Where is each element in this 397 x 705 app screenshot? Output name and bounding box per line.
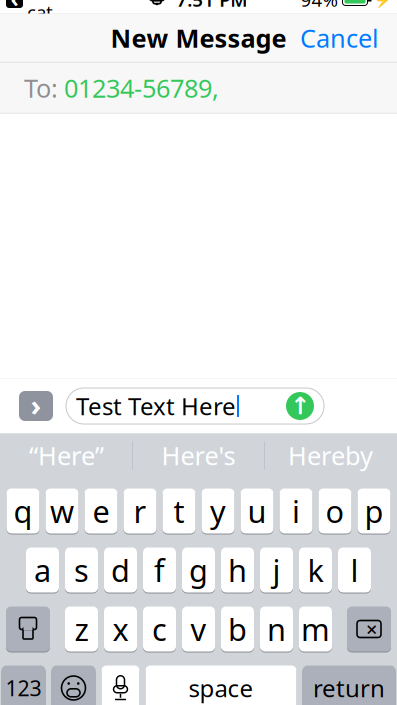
button[interactable]: Test Text Here (66, 386, 324, 426)
button[interactable]: d (104, 546, 137, 593)
staticText: c (152, 609, 167, 649)
staticText: ↑ (290, 392, 310, 420)
staticText: 01234-56789, (64, 71, 219, 105)
button[interactable]: o (318, 487, 351, 534)
staticText: Here's (161, 439, 235, 472)
button[interactable]: More options (16, 386, 56, 426)
button[interactable]: f (143, 546, 176, 593)
button[interactable]: r (123, 487, 156, 534)
button[interactable]: m (299, 605, 332, 652)
button[interactable]: To: (0, 62, 397, 113)
staticText: s (74, 550, 89, 590)
staticText: d (111, 550, 130, 590)
button[interactable]: u (240, 487, 273, 534)
button[interactable]: i (279, 487, 312, 534)
button[interactable]: w (45, 487, 78, 534)
staticText: q (13, 491, 32, 531)
staticText: To: (24, 71, 58, 105)
staticText: x (112, 609, 128, 649)
staticText: 7:51 PM (176, 0, 247, 12)
staticText: k (307, 550, 323, 590)
staticText: New Message (110, 21, 286, 55)
staticText: n (267, 609, 286, 649)
button[interactable]: Emoji (51, 664, 95, 705)
staticText: “Here” (29, 439, 104, 472)
staticText: × (366, 616, 377, 642)
staticText: a (34, 550, 51, 590)
button[interactable]: t (162, 487, 195, 534)
button[interactable]: y (201, 487, 234, 534)
staticText: space (188, 672, 253, 704)
button[interactable]: l (338, 546, 371, 593)
button[interactable]: j (260, 546, 293, 593)
button[interactable]: Delete (347, 605, 391, 652)
button[interactable]: 123 (1, 664, 45, 705)
staticText: y (210, 491, 226, 531)
button[interactable]: v (182, 605, 215, 652)
button[interactable]: Here's (133, 433, 264, 477)
button[interactable]: e (84, 487, 117, 534)
staticText: ‹ (10, 0, 18, 13)
button[interactable]: z (65, 605, 98, 652)
button[interactable]: b (221, 605, 254, 652)
staticText: u (247, 491, 266, 531)
staticText: b (228, 609, 247, 649)
button[interactable]: Hereby (265, 433, 396, 477)
staticText: Test Text Here (76, 390, 236, 422)
staticText: i (292, 491, 300, 531)
staticText: › (30, 385, 41, 424)
button[interactable]: c (143, 605, 176, 652)
staticText: m (301, 609, 330, 649)
staticText: p (364, 491, 383, 531)
button[interactable]: n (260, 605, 293, 652)
staticText: e (92, 491, 109, 531)
staticText: return (313, 672, 385, 704)
staticText: f (154, 550, 165, 590)
staticText: ⚡ (374, 0, 392, 8)
staticText: w (50, 491, 74, 531)
button[interactable]: x (104, 605, 137, 652)
staticText: r (133, 491, 146, 531)
button[interactable]: p (357, 487, 390, 534)
staticText: Cancel (300, 21, 379, 55)
staticText: z (74, 609, 88, 649)
button[interactable]: h (221, 546, 254, 593)
button[interactable]: Dictation (101, 664, 139, 705)
button[interactable]: return (302, 664, 395, 705)
staticText: j (272, 550, 280, 590)
staticText: Hereby (288, 439, 373, 472)
staticText: t (173, 491, 184, 531)
staticText: 94% (300, 0, 338, 12)
staticText: l (350, 550, 358, 590)
button[interactable]: Cancel (288, 13, 391, 63)
staticText: h (228, 550, 247, 590)
staticText: RNCommunicat… (27, 0, 145, 24)
staticText: o (325, 491, 344, 531)
staticText: 123 (5, 674, 41, 702)
button[interactable]: “Here” (1, 433, 132, 477)
button[interactable]: s (65, 546, 98, 593)
button[interactable]: g (182, 546, 215, 593)
button[interactable]: space (145, 664, 296, 705)
button[interactable]: k (299, 546, 332, 593)
button[interactable]: Shift (6, 605, 50, 652)
button[interactable]: q (6, 487, 39, 534)
staticText: g (189, 550, 208, 590)
button[interactable]: a (26, 546, 59, 593)
staticText: v (190, 609, 206, 649)
